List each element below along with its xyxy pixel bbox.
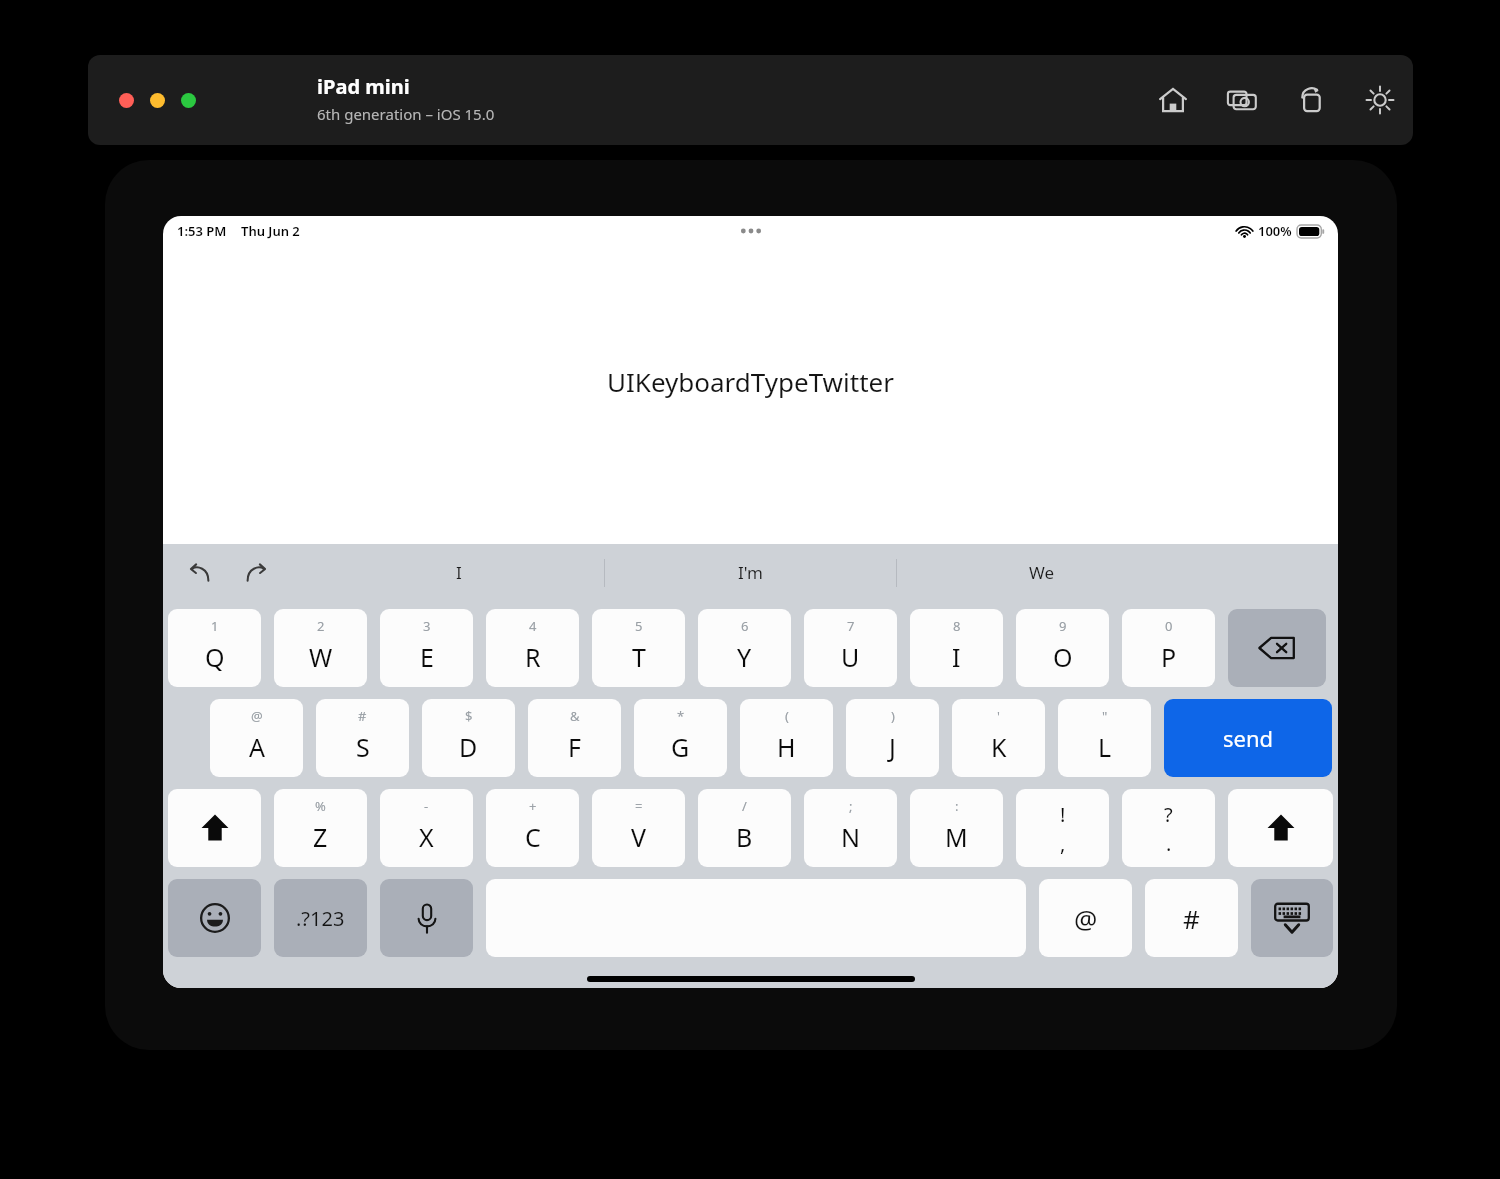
button[interactable]: # xyxy=(1145,879,1238,957)
staticText: K xyxy=(991,730,1007,764)
staticText: N xyxy=(841,820,861,854)
button[interactable]: Backspace xyxy=(1228,609,1326,687)
button[interactable]: ' xyxy=(952,699,1045,777)
button[interactable]: ; xyxy=(804,789,897,867)
button[interactable]: ) xyxy=(846,699,939,777)
button[interactable]: # xyxy=(316,699,409,777)
button[interactable]: Hide keyboard xyxy=(1251,879,1333,957)
button[interactable]: 8 xyxy=(910,609,1003,687)
button[interactable]: I'm xyxy=(604,544,896,601)
staticText: 1 xyxy=(211,617,219,635)
button[interactable]: " xyxy=(1058,699,1151,777)
staticText: X xyxy=(419,820,434,854)
button[interactable]: Emoji xyxy=(168,879,261,957)
staticText: ' xyxy=(997,707,1000,725)
staticText: % xyxy=(315,797,326,815)
button[interactable]: @ xyxy=(1039,879,1132,957)
staticText: B xyxy=(736,820,753,854)
staticText: 1:53 PM xyxy=(177,222,227,240)
staticText: . xyxy=(1166,830,1172,857)
staticText: R xyxy=(525,640,541,674)
staticText: I xyxy=(456,561,462,584)
button[interactable]: 1 xyxy=(168,609,261,687)
staticText: iPad mini xyxy=(317,73,410,100)
button[interactable]: 6 xyxy=(698,609,791,687)
button[interactable]: * xyxy=(634,699,727,777)
button[interactable]: .?123 xyxy=(274,879,367,957)
staticText: F xyxy=(568,730,581,764)
staticText: T xyxy=(632,640,646,674)
staticText: ( xyxy=(785,707,789,725)
staticText: " xyxy=(1102,707,1108,725)
staticText: , xyxy=(1060,830,1066,857)
button[interactable]: Shift xyxy=(1228,789,1333,867)
button[interactable]: 4 xyxy=(486,609,579,687)
button[interactable]: Brightness xyxy=(1358,78,1402,122)
staticText: Q xyxy=(205,640,225,674)
staticText: D xyxy=(459,730,478,764)
staticText: $ xyxy=(465,707,473,725)
button[interactable]: $ xyxy=(422,699,515,777)
staticText: = xyxy=(635,797,643,815)
staticText: Z xyxy=(313,820,328,854)
button[interactable]: @ xyxy=(210,699,303,777)
button[interactable]: + xyxy=(486,789,579,867)
staticText: G xyxy=(671,730,690,764)
button[interactable]: Home xyxy=(1151,78,1195,122)
button[interactable]: & xyxy=(528,699,621,777)
button[interactable]: Rotate xyxy=(1289,78,1333,122)
staticText: send xyxy=(1223,723,1274,753)
button[interactable]: Redo xyxy=(239,556,273,590)
button[interactable]: % xyxy=(274,789,367,867)
staticText: H xyxy=(777,730,796,764)
staticText: 3 xyxy=(423,617,431,635)
button[interactable]: 5 xyxy=(592,609,685,687)
button[interactable]: 3 xyxy=(380,609,473,687)
button[interactable]: 9 xyxy=(1016,609,1109,687)
staticText: UIKeyboardTypeTwitter xyxy=(607,364,894,399)
staticText: W xyxy=(309,640,333,674)
button[interactable]: ? xyxy=(1122,789,1215,867)
staticText: - xyxy=(424,797,429,815)
staticText: E xyxy=(420,640,434,674)
staticText: L xyxy=(1098,730,1112,764)
button[interactable]: Screenshot xyxy=(1220,78,1264,122)
button[interactable] xyxy=(119,93,134,108)
staticText: 2 xyxy=(317,617,325,635)
button[interactable]: = xyxy=(592,789,685,867)
button[interactable]: Undo xyxy=(183,556,217,590)
staticText: U xyxy=(841,640,860,674)
button[interactable] xyxy=(181,93,196,108)
staticText: Y xyxy=(737,640,752,674)
button[interactable]: ( xyxy=(740,699,833,777)
button[interactable]: ! xyxy=(1016,789,1109,867)
staticText: O xyxy=(1053,640,1073,674)
button[interactable]: 0 xyxy=(1122,609,1215,687)
button[interactable]: We xyxy=(896,544,1188,601)
button[interactable]: I xyxy=(313,544,604,601)
button[interactable]: Shift xyxy=(168,789,261,867)
staticText: 8 xyxy=(953,617,961,635)
button[interactable]: / xyxy=(698,789,791,867)
staticText: & xyxy=(570,707,580,725)
button[interactable]: send xyxy=(1164,699,1332,777)
button[interactable]: 7 xyxy=(804,609,897,687)
staticText: P xyxy=(1161,640,1177,674)
staticText: 4 xyxy=(529,617,537,635)
staticText: : xyxy=(955,797,959,815)
button[interactable]: : xyxy=(910,789,1003,867)
staticText: We xyxy=(1029,561,1055,584)
button[interactable] xyxy=(150,93,165,108)
staticText: + xyxy=(529,797,537,815)
staticText: 0 xyxy=(1165,617,1173,635)
staticText: I'm xyxy=(738,561,763,584)
staticText: 100% xyxy=(1258,222,1292,240)
button[interactable]: - xyxy=(380,789,473,867)
staticText: # xyxy=(358,707,367,725)
staticText: @ xyxy=(1074,901,1098,936)
staticText: 5 xyxy=(635,617,643,635)
staticText: * xyxy=(677,707,685,725)
button[interactable]: Dictation xyxy=(380,879,473,957)
button[interactable]: 2 xyxy=(274,609,367,687)
